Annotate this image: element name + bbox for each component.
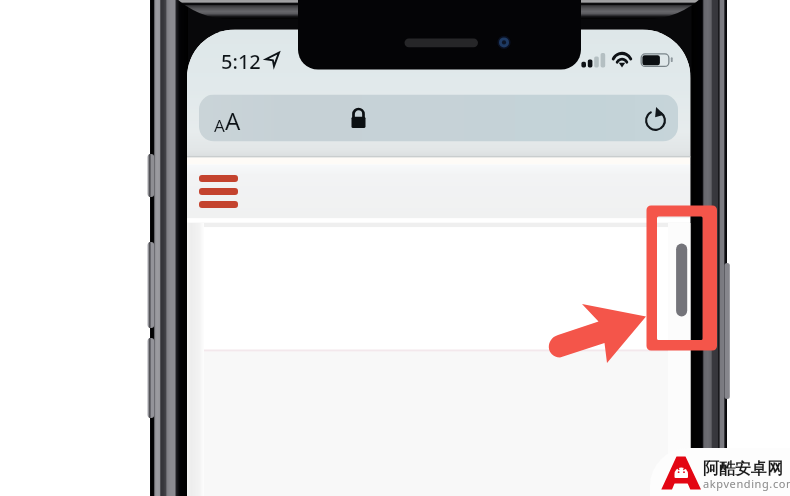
- button[interactable]: Reload page: [640, 103, 674, 139]
- button[interactable]: Open menu: [194, 168, 246, 214]
- staticText: A: [225, 104, 241, 137]
- button[interactable]: Website security lock: [344, 100, 374, 138]
- staticText: 5:12: [221, 48, 261, 75]
- staticText: akpvending.com: [703, 476, 790, 491]
- button[interactable]: Text size: [205, 96, 249, 142]
- staticText: A: [214, 114, 225, 137]
- staticText: 阿酷安卓网: [703, 459, 783, 479]
